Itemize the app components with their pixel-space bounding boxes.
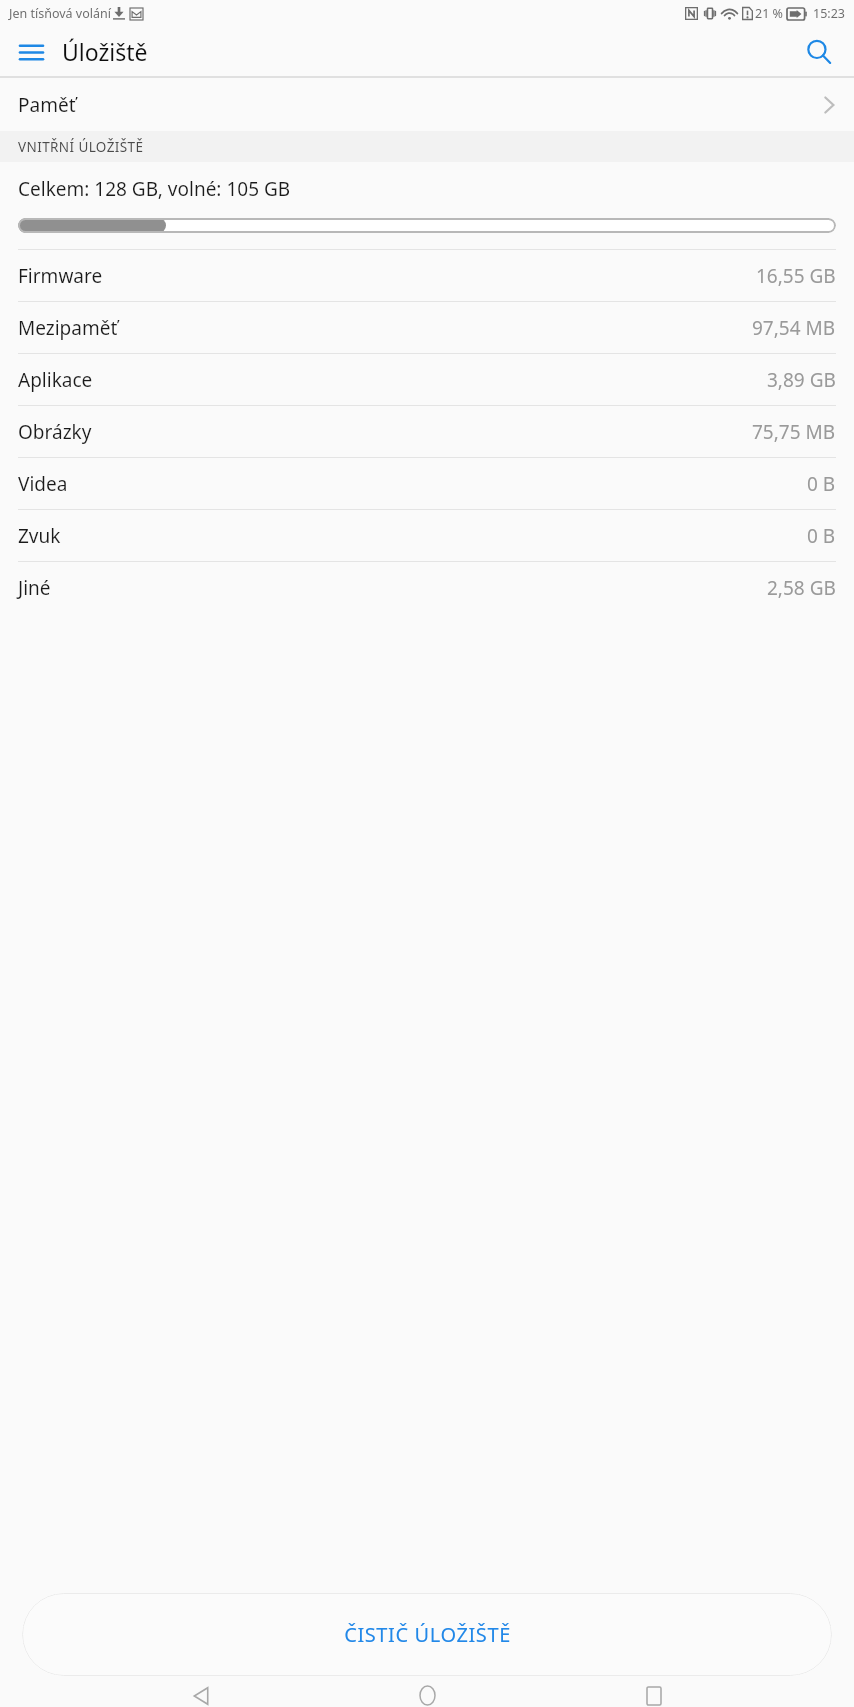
button[interactable]: Firmware (0, 250, 854, 301)
button[interactable]: ČISTIČ ÚLOŽIŠTĚ (22, 1593, 832, 1676)
staticText: VNITŘNÍ ÚLOŽIŠTĚ (18, 138, 144, 156)
button[interactable]: Back (175, 1684, 227, 1707)
button[interactable]: Zvuk (0, 510, 854, 561)
button[interactable]: Mezipaměť (0, 302, 854, 353)
staticText: 75,75 MB (752, 419, 836, 445)
button[interactable]: Home (401, 1684, 453, 1707)
staticText: 97,54 MB (752, 315, 836, 341)
staticText: Videa (18, 471, 68, 497)
button[interactable]: Search (796, 29, 842, 75)
button[interactable]: Paměť (0, 78, 854, 131)
staticText: Firmware (18, 263, 103, 289)
button[interactable]: Recent apps (628, 1684, 680, 1707)
staticText: Celkem: 128 GB, volné: 105 GB (18, 176, 291, 202)
button[interactable]: Obrázky (0, 406, 854, 457)
button[interactable]: Videa (0, 458, 854, 509)
staticText: ČISTIČ ÚLOŽIŠTĚ (344, 1621, 511, 1648)
button[interactable]: Menu (10, 31, 52, 73)
button[interactable]: Jiné (0, 562, 854, 613)
staticText: Aplikace (18, 367, 93, 393)
staticText: 21 % (755, 5, 783, 22)
staticText: 15:23 (813, 5, 845, 22)
staticText: Paměť (18, 92, 76, 118)
staticText: Jen tísňová volání (9, 5, 111, 22)
staticText: Mezipaměť (18, 315, 118, 341)
staticText: 0 B (807, 471, 836, 497)
staticText: Úložiště (62, 36, 148, 67)
staticText: Jiné (18, 575, 51, 601)
staticText: 3,89 GB (767, 367, 836, 393)
staticText: 16,55 GB (756, 263, 836, 289)
staticText: Zvuk (18, 523, 61, 549)
button[interactable]: Aplikace (0, 354, 854, 405)
staticText: 0 B (807, 523, 836, 549)
staticText: 2,58 GB (767, 575, 836, 601)
staticText: Obrázky (18, 419, 92, 445)
